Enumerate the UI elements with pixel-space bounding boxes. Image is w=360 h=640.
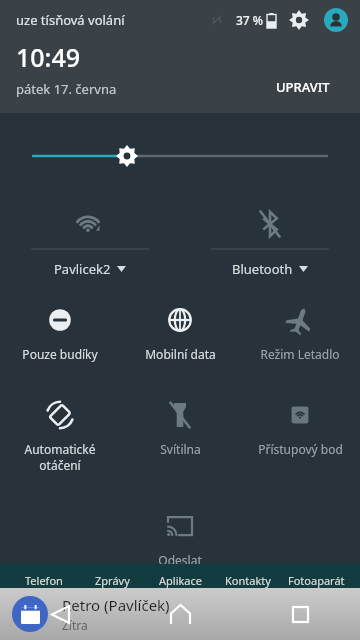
staticText: Fotoaparát (288, 573, 345, 588)
staticText: Aplikace (159, 573, 202, 588)
button[interactable]: Automatické otáčení (0, 400, 120, 473)
staticText: 37 % (236, 12, 264, 28)
staticText: Automatické otáčení (4, 441, 116, 473)
staticText: Pouze budíky (22, 346, 98, 362)
button[interactable]: Settings (288, 9, 310, 31)
button[interactable]: User (324, 8, 348, 32)
button[interactable]: Přístupový bod (240, 400, 360, 457)
staticText: Pavlicek2 (54, 260, 111, 277)
button[interactable]: Back (0, 588, 120, 640)
staticText: Režim Letadlo (260, 346, 340, 362)
staticText: Bluetooth (232, 260, 293, 277)
button[interactable]: UPRAVIT (276, 78, 330, 96)
staticText: UPRAVIT (276, 78, 330, 96)
button[interactable]: Mobilní data (120, 305, 240, 362)
button[interactable]: Home (120, 588, 240, 640)
button[interactable]: Pouze budíky (0, 305, 120, 362)
button[interactable]: Režim Letadlo (240, 305, 360, 362)
staticText: pátek 17. června (16, 80, 117, 98)
button[interactable]: Recents (240, 588, 360, 640)
staticText: Svítilna (160, 441, 201, 457)
button[interactable]: Odeslat (120, 511, 240, 568)
button[interactable]: Pavlicek2 (0, 197, 180, 277)
staticText: Zítra (62, 617, 88, 633)
staticText: Přístupový bod (258, 441, 343, 457)
staticText: Zprávy (95, 573, 130, 588)
staticText: Telefon (25, 573, 63, 588)
button[interactable]: Bluetooth (180, 197, 360, 277)
button[interactable]: Svítilna (120, 400, 240, 457)
staticText: Mobilní data (145, 346, 216, 362)
staticText: Odeslat (158, 552, 202, 568)
button[interactable]: Brightness (0, 140, 360, 172)
staticText: Kontakty (225, 573, 271, 588)
staticText: Retro (Pavlíček) (62, 595, 170, 615)
staticText: uze tísňová volání (16, 11, 125, 29)
staticText: 10:49 (16, 40, 81, 74)
